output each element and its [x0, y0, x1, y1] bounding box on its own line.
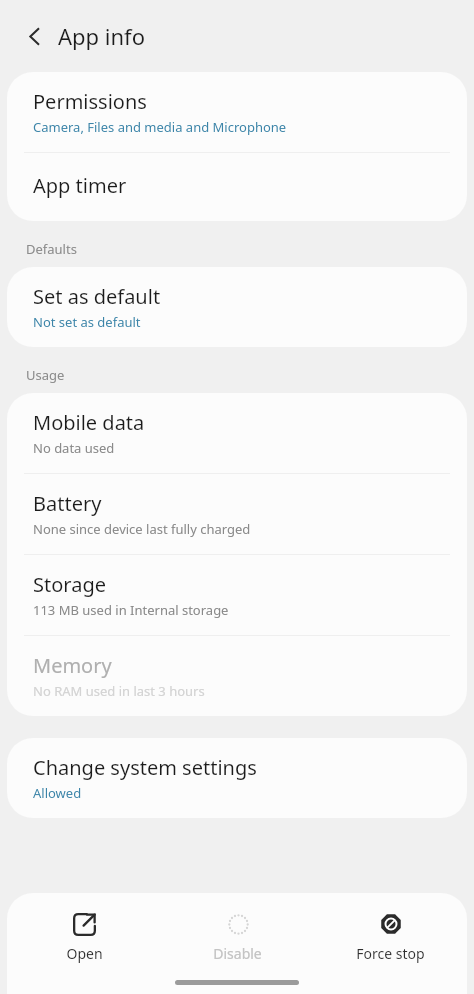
button[interactable]: Open	[7, 907, 161, 967]
staticText: Disable	[213, 944, 262, 963]
staticText: No data used	[33, 439, 115, 457]
staticText: None since device last fully charged	[33, 520, 251, 538]
staticText: No RAM used in last 3 hours	[33, 682, 205, 700]
button[interactable]: Memory	[7, 636, 467, 716]
staticText: Defaults	[26, 240, 77, 258]
staticText: 113 MB used in Internal storage	[33, 601, 229, 619]
staticText: Mobile data	[33, 409, 145, 436]
button[interactable]: Permissions	[7, 72, 467, 152]
staticText: Camera, Files and media and Microphone	[33, 118, 287, 136]
staticText: Storage	[33, 571, 106, 598]
staticText: Permissions	[33, 88, 147, 115]
button[interactable]: Battery	[7, 474, 467, 554]
staticText: App info	[58, 21, 145, 51]
staticText: Change system settings	[33, 754, 257, 781]
button[interactable]: App timer	[7, 153, 467, 221]
staticText: Not set as default	[33, 313, 141, 331]
staticText: Usage	[26, 366, 65, 384]
staticText: Force stop	[356, 944, 425, 963]
button[interactable]: Back	[17, 19, 51, 53]
button[interactable]: Set as default	[7, 267, 467, 347]
staticText: Battery	[33, 490, 102, 517]
staticText: Allowed	[33, 784, 82, 802]
button[interactable]: Change system settings	[7, 738, 467, 818]
staticText: Set as default	[33, 283, 161, 310]
button[interactable]: Storage	[7, 555, 467, 635]
button[interactable]: Mobile data	[7, 393, 467, 473]
staticText: Open	[66, 944, 103, 963]
button[interactable]: Disable	[161, 907, 314, 967]
staticText: Memory	[33, 652, 112, 679]
button[interactable]: Force stop	[314, 907, 467, 967]
staticText: App timer	[33, 172, 127, 199]
